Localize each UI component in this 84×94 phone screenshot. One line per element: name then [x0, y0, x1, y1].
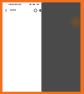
button[interactable]: Search	[32, 7, 38, 13]
button[interactable]: Menu	[3, 7, 9, 13]
button[interactable]	[10, 7, 16, 13]
button[interactable]: Account	[37, 7, 42, 13]
button[interactable]: Add	[69, 15, 80, 29]
